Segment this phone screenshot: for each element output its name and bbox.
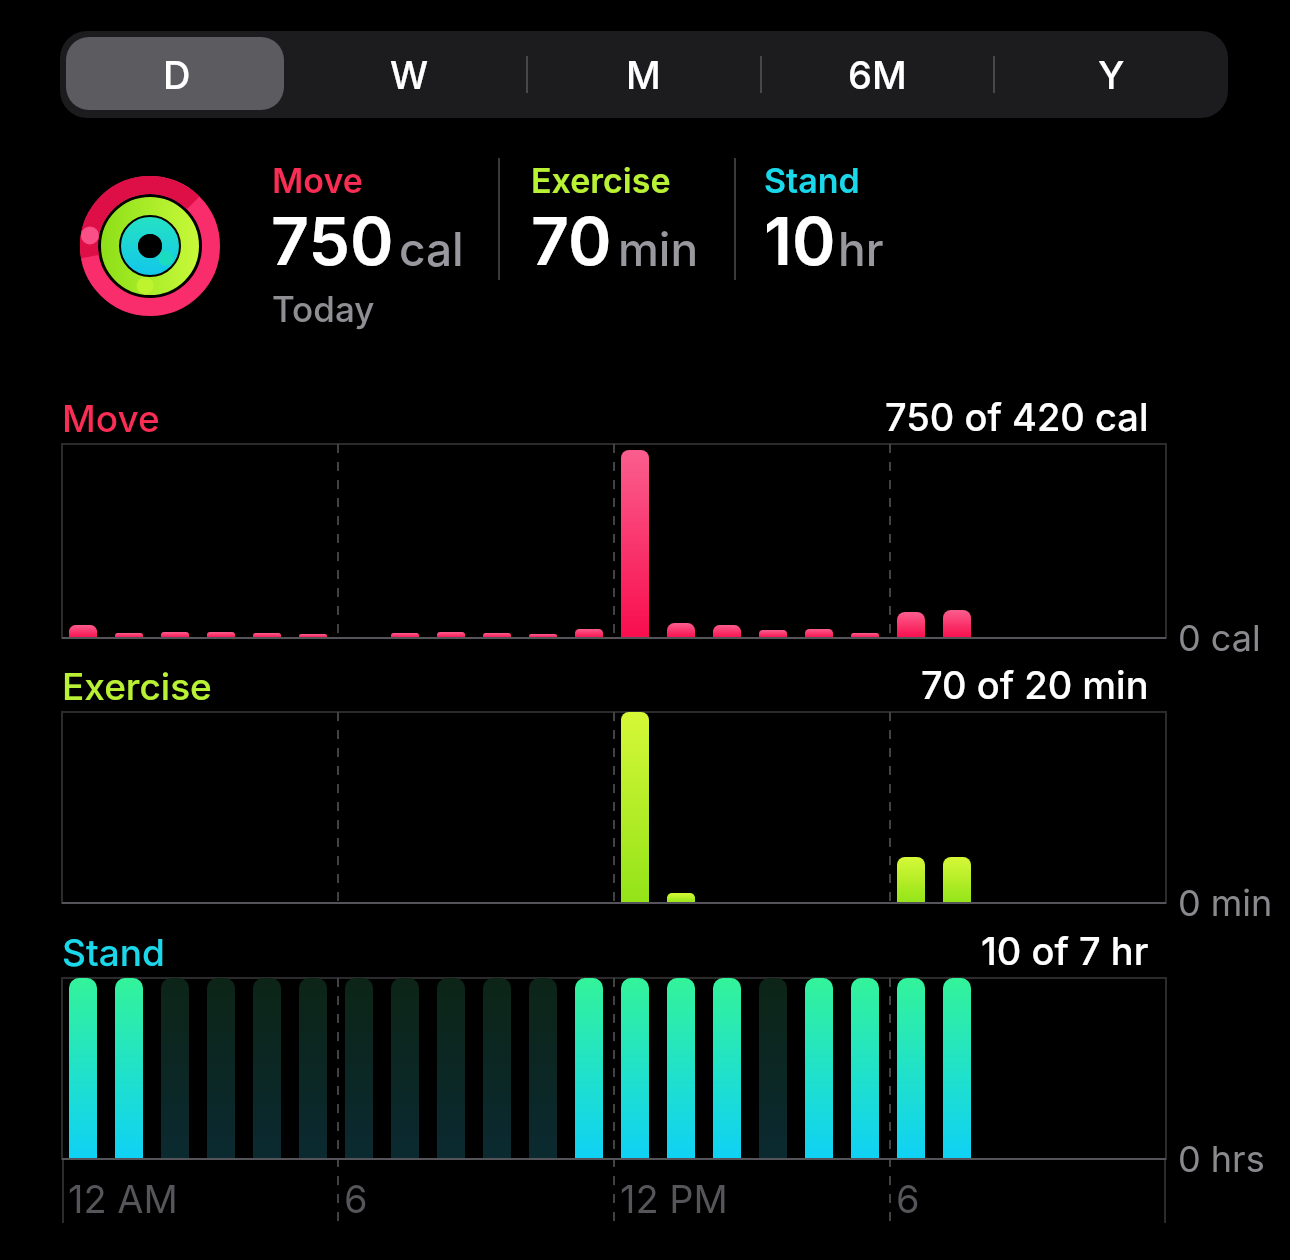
staticText: Move: [62, 396, 160, 441]
button[interactable]: W: [293, 31, 526, 118]
staticText: 750: [271, 201, 394, 281]
staticText: 70 of 20 min: [921, 662, 1149, 706]
staticText: Today: [272, 288, 375, 330]
staticText: hr: [838, 221, 884, 277]
button[interactable]: D: [60, 31, 293, 118]
staticText: 6M: [848, 52, 907, 98]
staticText: 12 AM: [68, 1176, 178, 1222]
staticText: D: [163, 52, 191, 98]
staticText: 12 PM: [620, 1176, 728, 1222]
staticText: cal: [399, 221, 464, 277]
button[interactable]: 6M: [760, 31, 994, 118]
staticText: min: [618, 221, 699, 277]
staticText: Exercise: [531, 160, 671, 201]
staticText: 0 min: [1178, 881, 1273, 925]
staticText: Move: [272, 160, 363, 201]
staticText: 6: [344, 1176, 368, 1222]
staticText: 6: [896, 1176, 920, 1222]
staticText: Y: [1098, 52, 1125, 98]
staticText: 70: [531, 201, 612, 281]
staticText: 10 of 7 hr: [981, 928, 1149, 972]
staticText: M: [626, 52, 661, 98]
staticText: 0 cal: [1178, 616, 1261, 660]
staticText: W: [390, 52, 429, 98]
staticText: Stand: [764, 160, 860, 201]
staticText: 750 of 420 cal: [885, 394, 1149, 438]
staticText: 0 hrs: [1178, 1137, 1265, 1181]
button[interactable]: Y: [994, 31, 1228, 118]
staticText: Exercise: [62, 664, 212, 709]
staticText: Stand: [62, 930, 165, 975]
staticText: 10: [764, 201, 836, 281]
button[interactable]: M: [526, 31, 760, 118]
